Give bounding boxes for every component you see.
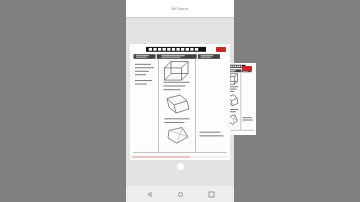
button[interactable] [132, 156, 228, 158]
button[interactable]: Record [212, 63, 256, 135]
staticText: Ad Space [171, 6, 189, 11]
button[interactable]: Home [172, 186, 188, 202]
button[interactable]: Recent apps [203, 186, 219, 202]
button[interactable]: Record [216, 47, 226, 52]
button[interactable]: Back [141, 186, 157, 202]
button[interactable]: Record [130, 44, 230, 160]
button[interactable]: Page handle [177, 163, 184, 170]
button[interactable]: Ad Space [126, 0, 234, 17]
button[interactable]: Record [242, 66, 252, 71]
